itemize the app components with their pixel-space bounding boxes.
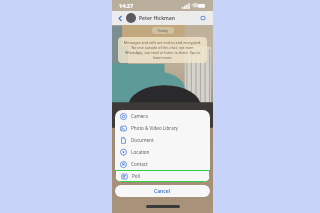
- button[interactable]: Document: [115, 134, 210, 146]
- button[interactable]: Contact: [115, 158, 210, 170]
- button[interactable]: Photo & Video Library: [115, 122, 210, 134]
- staticText: Document: [131, 137, 154, 143]
- staticText: Today: [157, 28, 169, 33]
- staticText: Photo & Video Library: [131, 125, 178, 131]
- button[interactable]: Poll: [116, 171, 209, 181]
- button[interactable]: Camera: [115, 110, 210, 122]
- staticText: Contact: [131, 161, 148, 167]
- staticText: 14:27: [119, 2, 134, 9]
- staticText: Location: [131, 149, 150, 155]
- button[interactable]: Cancel: [115, 185, 210, 197]
- button[interactable]: Back: [116, 14, 125, 23]
- staticText: Poll: [132, 173, 140, 179]
- staticText: Cancel: [154, 188, 171, 195]
- staticText: Camera: [131, 113, 148, 119]
- staticText: Messages and calls are end-to-end encryp…: [122, 40, 203, 60]
- staticText: Peter Hickman: [139, 15, 175, 22]
- button[interactable]: Location: [115, 146, 210, 158]
- button[interactable]: Video call: [199, 13, 209, 23]
